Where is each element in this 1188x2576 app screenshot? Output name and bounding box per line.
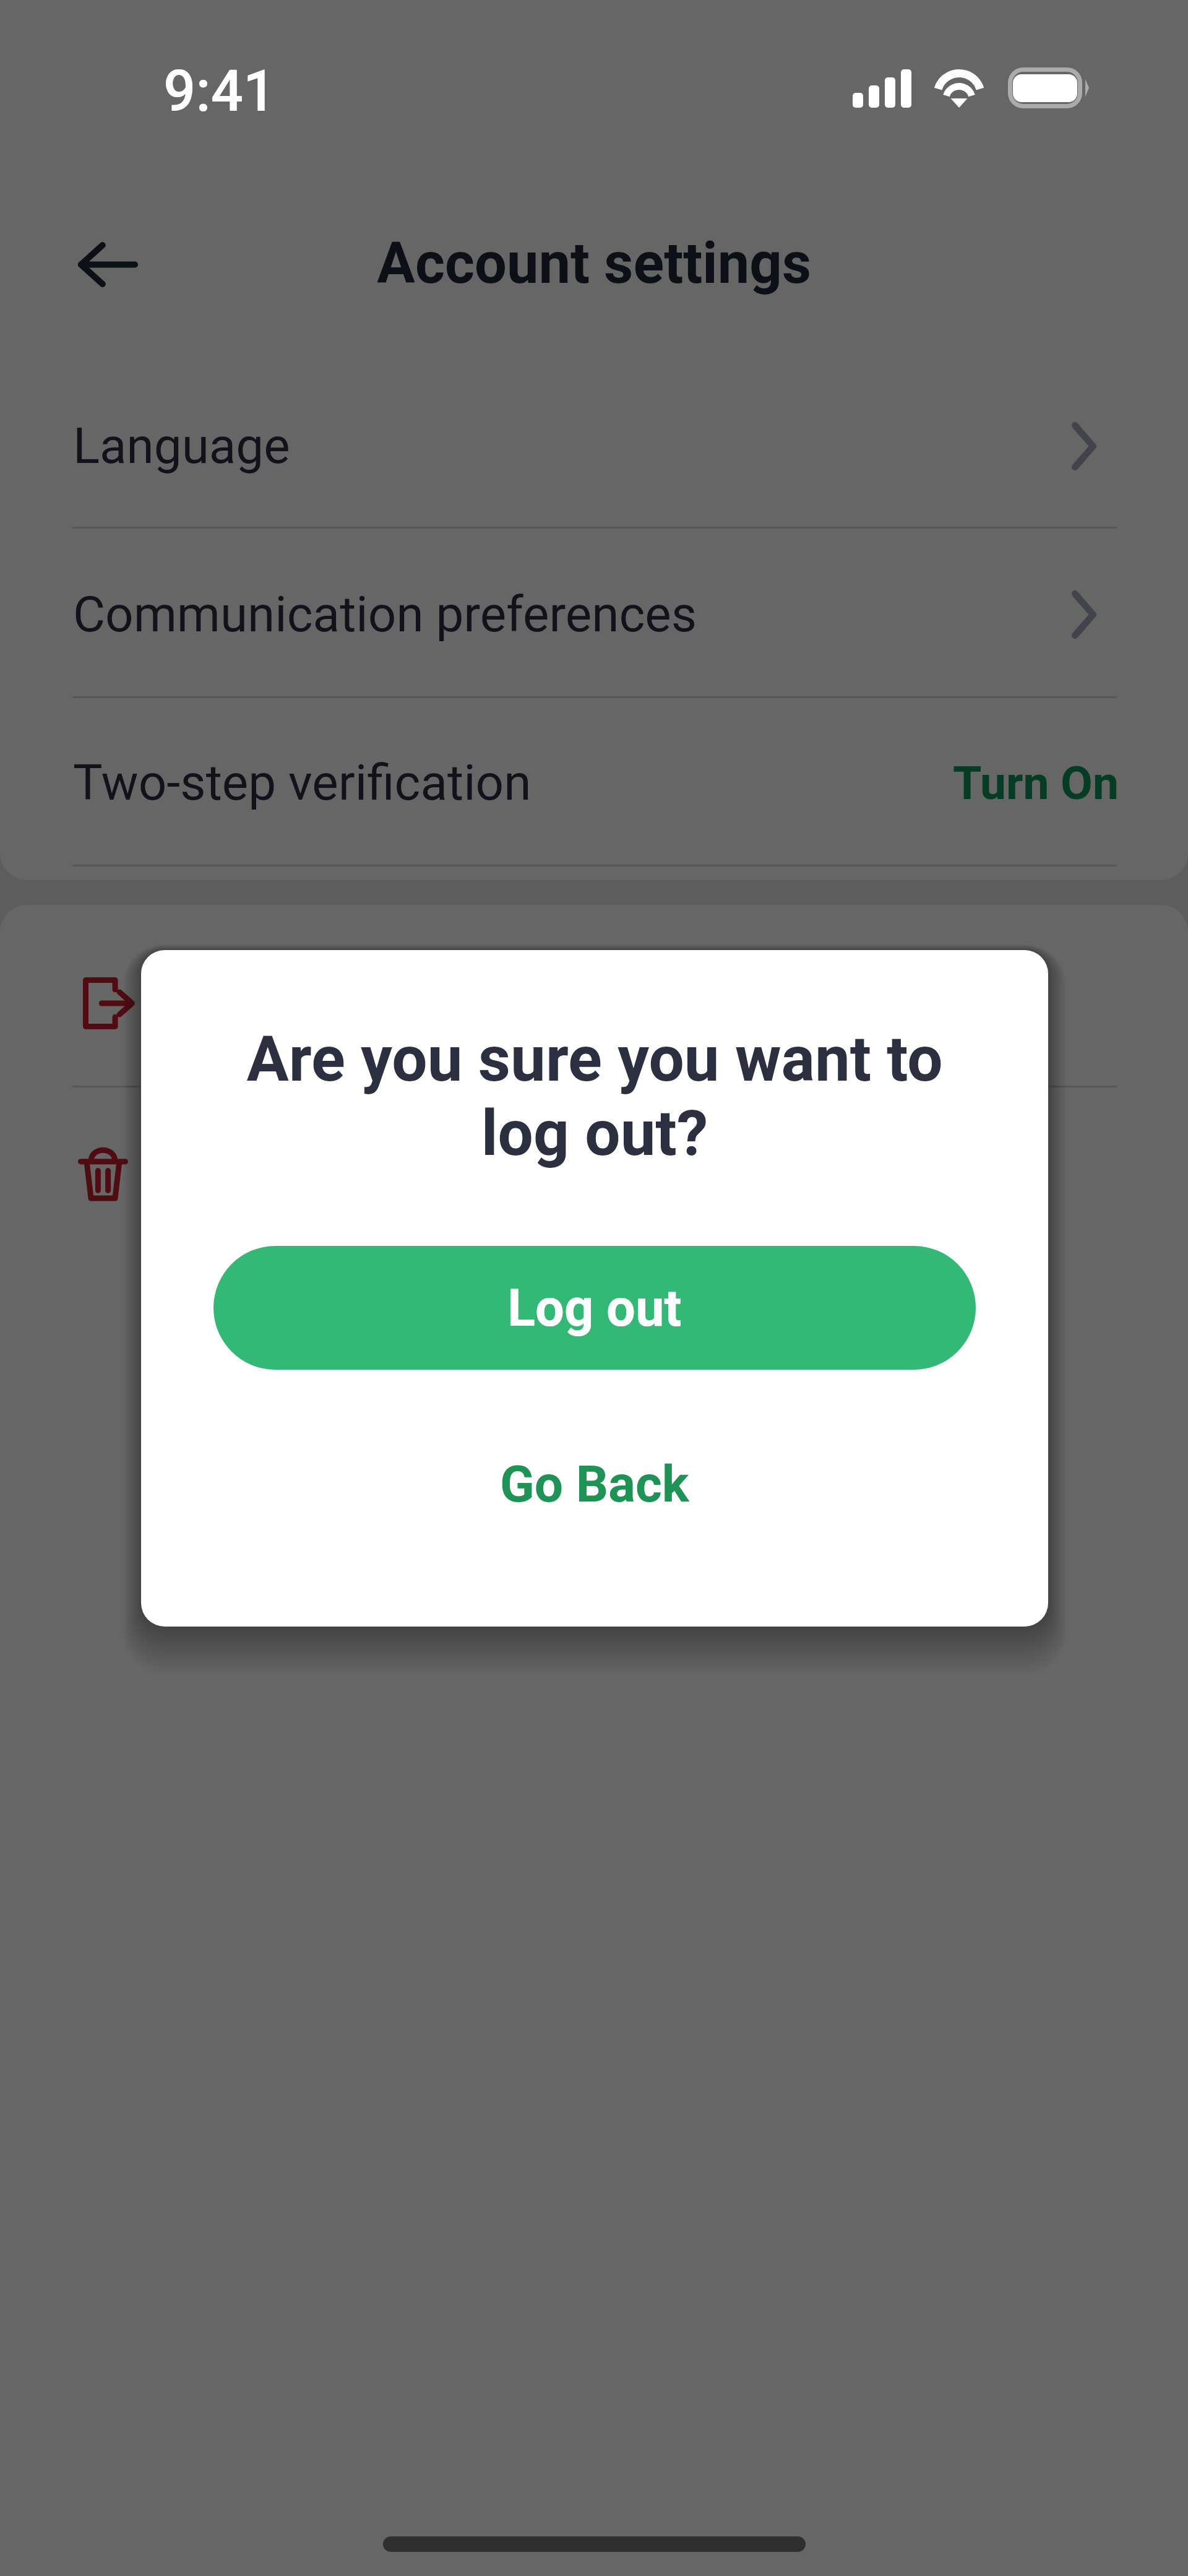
staticText: Are you sure you want to log out?	[213, 1022, 976, 1170]
staticText: 9:41	[163, 58, 276, 125]
button[interactable]: Log out	[213, 1246, 976, 1370]
button[interactable]: Two-step verification	[0, 698, 1188, 867]
button[interactable]: Back	[46, 210, 170, 318]
button[interactable]: Language	[0, 361, 1188, 530]
staticText: Delete account	[158, 1144, 488, 1203]
staticText: Communication preferences	[73, 586, 697, 644]
button[interactable]: Delete account	[0, 1087, 1188, 1260]
staticText: Account settings	[377, 230, 812, 297]
button[interactable]: Go Back	[213, 1422, 976, 1546]
button[interactable]: Communication preferences	[0, 530, 1188, 699]
staticText: Two-step verification	[73, 754, 532, 812]
staticText: Go Back	[500, 1454, 689, 1514]
staticText: Turn On	[953, 756, 1119, 810]
button[interactable]: Log out	[0, 917, 1188, 1089]
staticText: Log out	[507, 1278, 682, 1338]
staticText: Language	[73, 417, 290, 475]
